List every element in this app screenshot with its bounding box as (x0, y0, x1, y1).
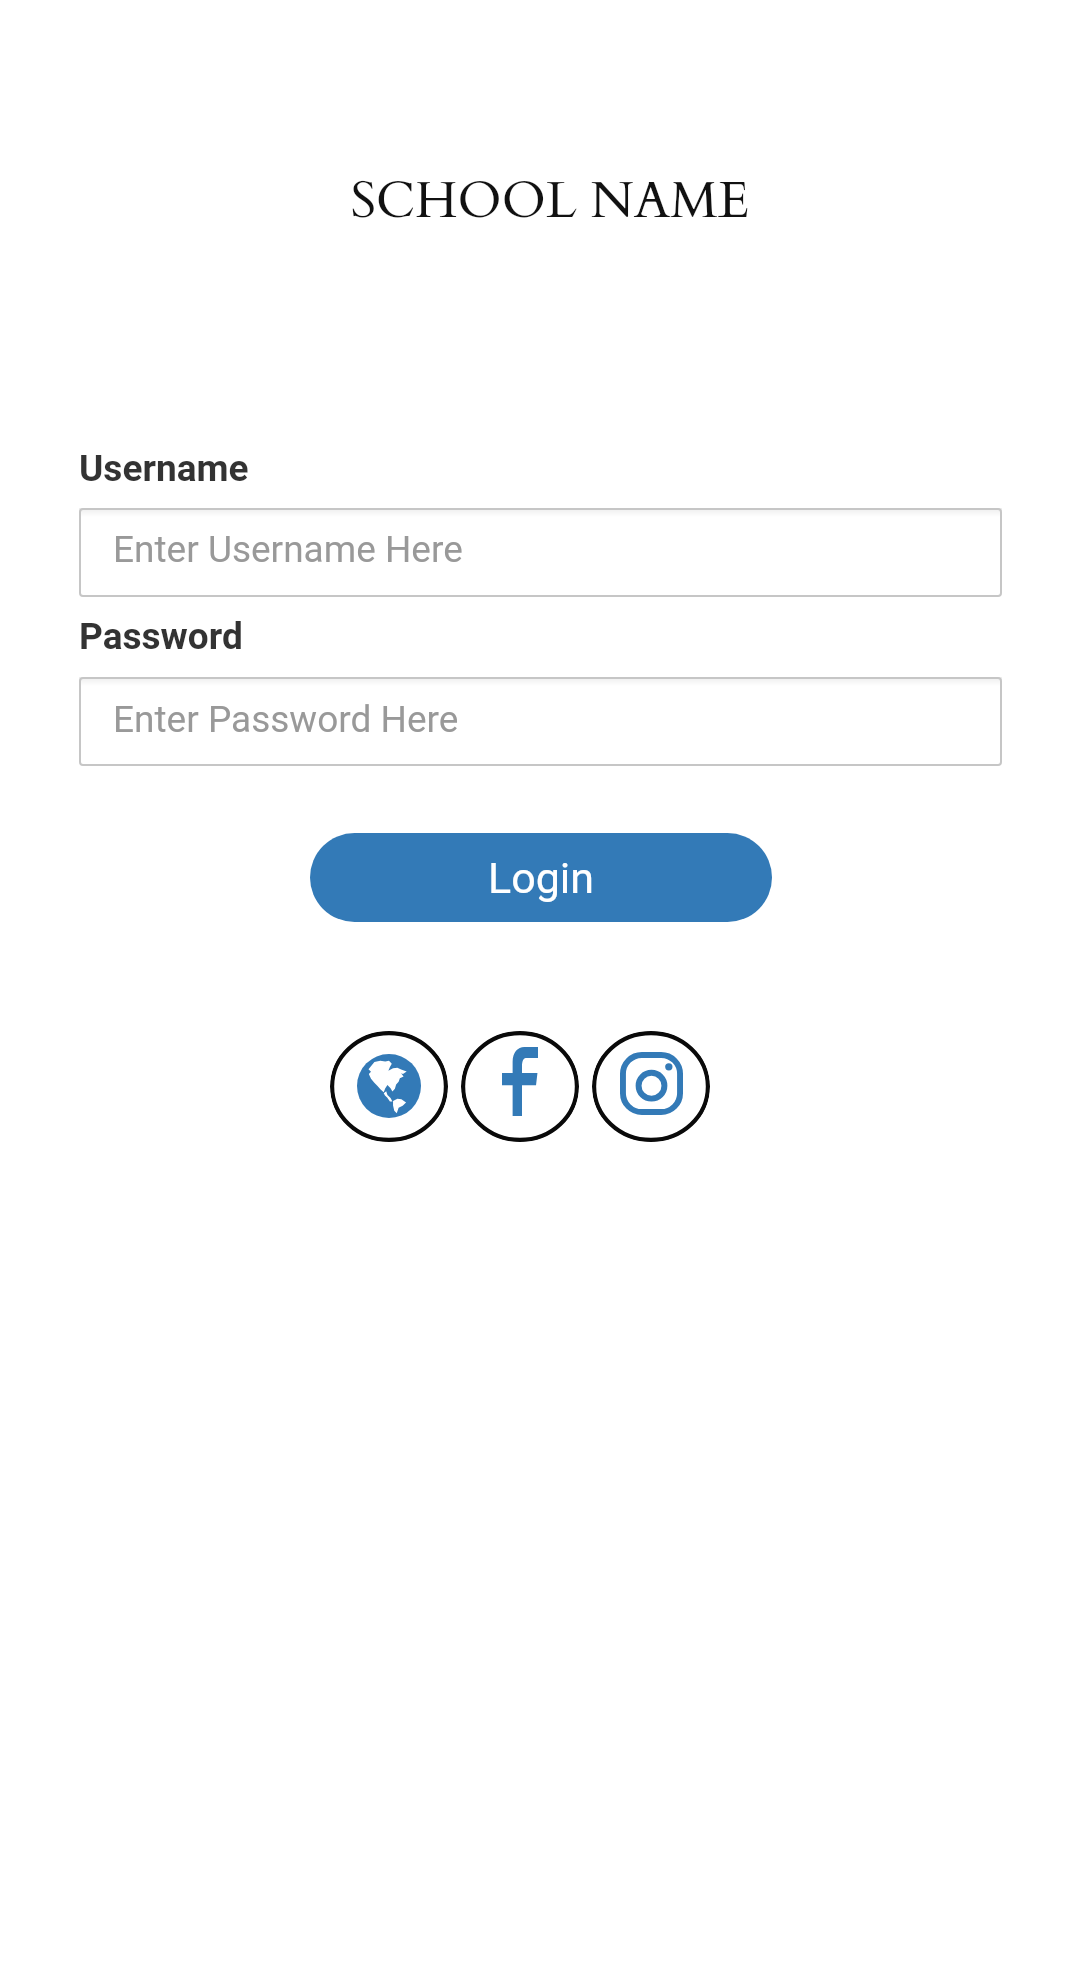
button[interactable]: Website (330, 1031, 448, 1142)
staticText: Username (79, 447, 249, 490)
staticText: Enter Username Here (113, 528, 463, 571)
button[interactable]: Enter Username Here (79, 508, 1002, 597)
button[interactable]: Enter Password Here (79, 677, 1002, 766)
staticText: SCHOOL NAME (10, 166, 1080, 235)
button[interactable]: Facebook (461, 1031, 579, 1142)
staticText: Login (488, 853, 595, 903)
button[interactable]: Instagram (592, 1031, 710, 1142)
staticText: Password (79, 615, 243, 658)
staticText: Enter Password Here (113, 698, 459, 741)
button[interactable]: Login (310, 833, 772, 922)
